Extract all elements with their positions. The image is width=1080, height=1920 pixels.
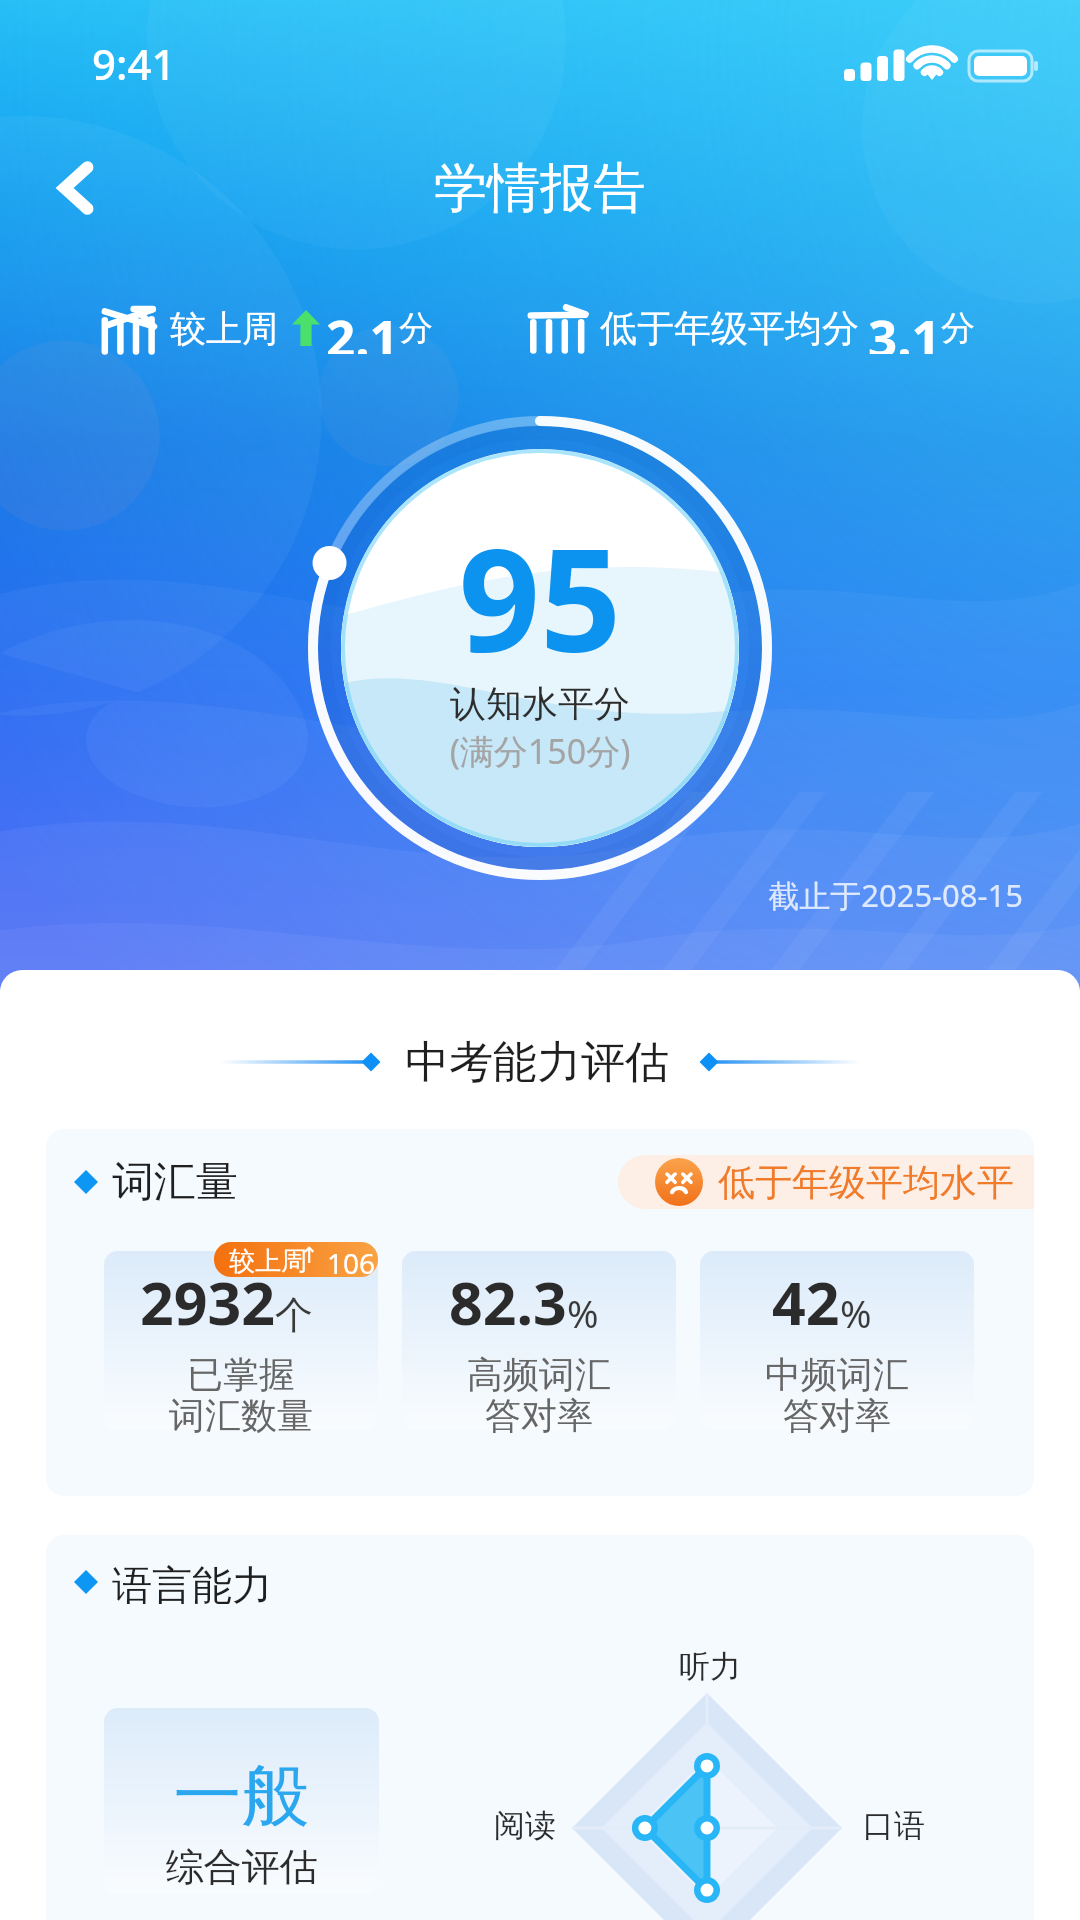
staticText: 答对率 [402,1393,676,1438]
staticText: 截止于2025-08-15 [0,874,1023,916]
staticText: 中频词汇 [700,1352,974,1397]
staticText: 较上周 [229,1245,307,1277]
staticText: 低于年级平均分 [600,305,859,352]
staticText: 2932 [140,1262,275,1342]
button[interactable]: 词汇量 [46,1129,1034,1496]
staticText: 听力 [679,1647,741,1686]
staticText: 答对率 [700,1393,974,1438]
staticText: 认知水平分 [341,681,739,726]
staticText: 已掌握 [104,1352,378,1397]
staticText: % [567,1287,599,1339]
staticText: 个 [275,1291,313,1339]
staticText: 学情报告 [0,155,1080,222]
staticText: 词汇数量 [104,1393,378,1438]
staticText: 阅读 [494,1806,556,1845]
staticText: (满分150分) [341,728,739,774]
staticText: 综合评估 [104,1843,379,1891]
staticText: 中考能力评估 [405,1035,669,1090]
staticText: 95 [341,500,739,693]
staticText: 一般 [104,1754,379,1840]
staticText: 语言能力 [112,1560,272,1604]
staticText: ↑ [300,1243,319,1269]
staticText: 106 [327,1244,376,1277]
staticText: 9:41 [92,35,176,92]
staticText: 分 [941,307,975,350]
staticText: 较上周 [170,306,278,351]
staticText: 词汇量 [112,1156,238,1209]
staticText: % [840,1287,872,1339]
staticText: 82.3 [449,1262,567,1342]
staticText: 分 [399,307,433,350]
staticText: 3.1 [868,302,941,354]
staticText: 2.1 [326,302,399,354]
staticText: 42 [772,1262,840,1342]
staticText: 高频词汇 [402,1352,676,1397]
button[interactable]: Back [30,142,122,234]
staticText: 低于年级平均水平 [718,1159,1014,1206]
button[interactable]: 语言能力 [46,1535,1034,1920]
staticText: 口语 [863,1806,925,1845]
